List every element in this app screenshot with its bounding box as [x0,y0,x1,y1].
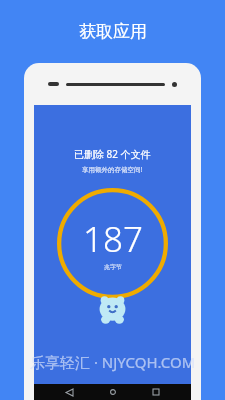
staticText: 享用额外的存储空间! [82,165,143,174]
button[interactable]: Back [61,384,77,400]
staticText: 获取应用 [79,21,147,42]
staticText: 187 [83,215,143,263]
button[interactable]: Home [105,384,121,400]
staticText: 乐享轻汇 · NJYCQH.COM [30,352,196,372]
button[interactable]: Freed storage 187 MB [57,188,168,299]
button[interactable]: Recents [148,384,164,400]
staticText: 兆字节 [104,263,122,271]
staticText: 已删除 82 个文件 [74,147,151,161]
